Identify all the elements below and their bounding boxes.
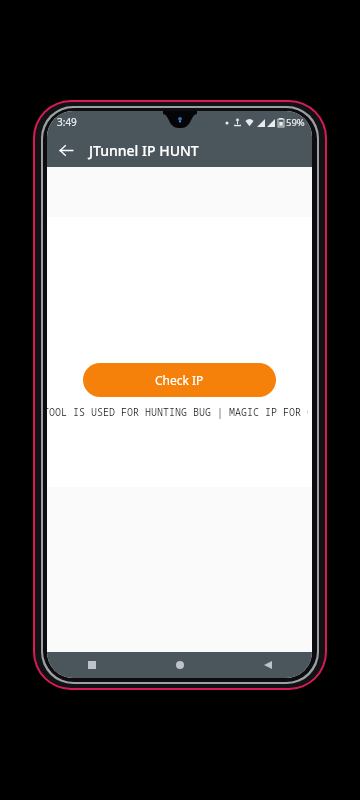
staticText: 3:49 <box>57 115 77 129</box>
button[interactable]: Back <box>51 135 81 165</box>
staticText: JTunnel IP HUNT <box>89 141 199 160</box>
button[interactable]: Back <box>224 652 312 678</box>
button[interactable]: Home <box>136 652 224 678</box>
button[interactable]: Check IP <box>83 363 276 397</box>
staticText: TOOL IS USED FOR HUNTING BUG | MAGIC IP … <box>47 405 308 419</box>
button[interactable]: Recents <box>47 652 136 678</box>
staticText: 59% <box>286 116 305 129</box>
staticText: Check IP <box>155 372 204 388</box>
